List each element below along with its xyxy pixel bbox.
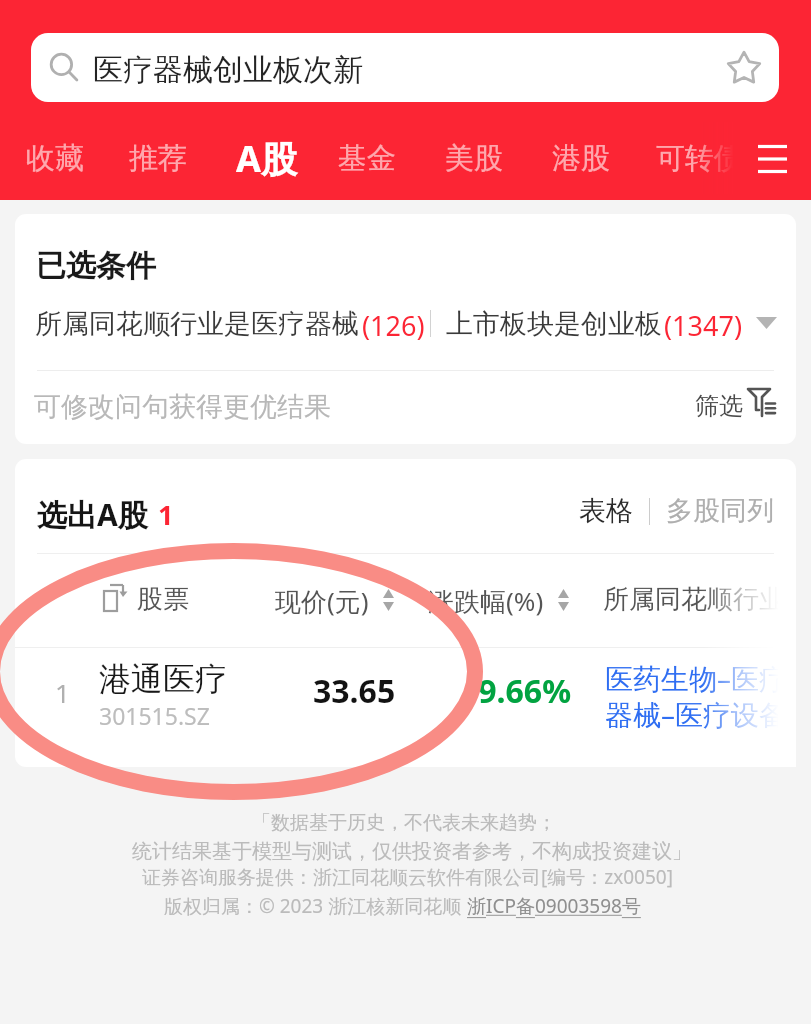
button[interactable]: Sort <box>377 585 399 615</box>
staticText: 可转债 <box>656 140 743 177</box>
staticText: 1 <box>158 496 174 533</box>
button[interactable]: Menu <box>746 131 799 184</box>
button[interactable]: Expand conditions <box>748 305 784 341</box>
button[interactable]: 浙ICP备09003598号 <box>467 893 641 919</box>
staticText: 所属同花顺行业是医疗器械 <box>35 307 359 341</box>
button[interactable]: 港股 <box>552 122 610 194</box>
staticText: 「数据基于历史，不代表未来趋势； <box>252 811 556 835</box>
button[interactable]: A股 <box>232 122 300 194</box>
button[interactable]: 多股同列 <box>666 494 774 528</box>
button[interactable] <box>15 648 796 767</box>
staticText: 所属同花顺行业 <box>603 583 785 616</box>
staticText: 表格 <box>579 494 633 528</box>
staticText: (1347) <box>664 307 742 344</box>
button[interactable]: 推荐 <box>129 122 187 194</box>
staticText: 浙ICP备09003598号 <box>467 893 641 919</box>
button[interactable]: 筛选 <box>686 383 786 427</box>
button[interactable]: Compare stocks <box>98 578 132 612</box>
staticText: 33.65 <box>313 669 396 713</box>
staticText: 证券咨询服务提供：浙江同花顺云软件有限公司[编号：zx0050] <box>142 864 673 890</box>
button[interactable] <box>31 33 779 102</box>
staticText: 器械–医疗设备 <box>605 695 788 733</box>
staticText: 美股 <box>445 140 503 177</box>
staticText: 统计结果基于模型与测试，仅供投资者参考，不构成投资建议」 <box>132 839 692 864</box>
staticText: 选出A股 <box>37 494 148 535</box>
staticText: 港通医疗 <box>99 659 227 699</box>
staticText: 收藏 <box>26 140 84 177</box>
staticText: 涨跌幅(%) <box>428 583 544 619</box>
button[interactable]: Favorite <box>726 50 762 86</box>
staticText: 基金 <box>338 140 396 177</box>
staticText: 上市板块是创业板 <box>446 307 662 341</box>
staticText: (126) <box>362 307 425 344</box>
staticText: 医疗器械创业板次新 <box>93 51 363 89</box>
button[interactable]: 可转债 <box>656 122 743 194</box>
button[interactable]: Sort <box>552 585 574 615</box>
button[interactable]: 收藏 <box>26 122 84 194</box>
staticText: 多股同列 <box>666 494 774 528</box>
staticText: 现价(元) <box>275 583 369 619</box>
staticText: 已选条件 <box>36 247 156 285</box>
staticText: 筛选 <box>695 391 743 421</box>
staticText: 推荐 <box>129 140 187 177</box>
staticText: 可修改问句获得更优结果 <box>34 390 331 424</box>
staticText: A股 <box>236 134 297 183</box>
staticText: 股票 <box>137 583 189 616</box>
staticText: 医药生物–医疗 <box>605 659 788 697</box>
staticText: -9.66% <box>468 669 572 713</box>
staticText: 1 <box>55 675 70 710</box>
button[interactable]: 基金 <box>338 122 396 194</box>
staticText: 301515.SZ <box>99 700 210 731</box>
staticText: 版权归属：© 2023 浙江核新同花顺 <box>164 893 467 919</box>
staticText: 港股 <box>552 140 610 177</box>
button[interactable]: 美股 <box>445 122 503 194</box>
button[interactable]: 表格 <box>579 494 633 528</box>
